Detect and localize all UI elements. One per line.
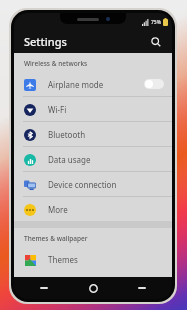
staticText: 75% [151,19,161,26]
staticText: Settings [24,34,67,49]
staticText: Data usage [48,154,164,165]
staticText: Themes [48,254,164,265]
staticText: Device connection [48,179,164,190]
button[interactable]: Themes [14,247,172,271]
button[interactable]: Wi-Fi [14,97,172,122]
button[interactable]: Recents [134,281,150,295]
button[interactable]: Home [86,281,100,295]
button[interactable]: Back [36,281,52,295]
staticText: Wi-Fi [48,104,164,115]
staticText: Wireless & networks [24,59,88,68]
staticText: Themes & wallpaper [24,234,88,243]
button[interactable]: Device connection [14,172,172,197]
staticText: More [48,204,164,215]
button[interactable]: More [14,197,172,221]
button[interactable]: Search [147,33,165,51]
button[interactable]: Data usage [14,147,172,172]
button[interactable]: Airplane mode [14,72,172,97]
staticText: Bluetooth [48,129,164,140]
button[interactable]: Bluetooth [14,122,172,147]
button[interactable]: Airplane mode toggle [144,79,164,89]
staticText: Airplane mode [48,79,144,90]
